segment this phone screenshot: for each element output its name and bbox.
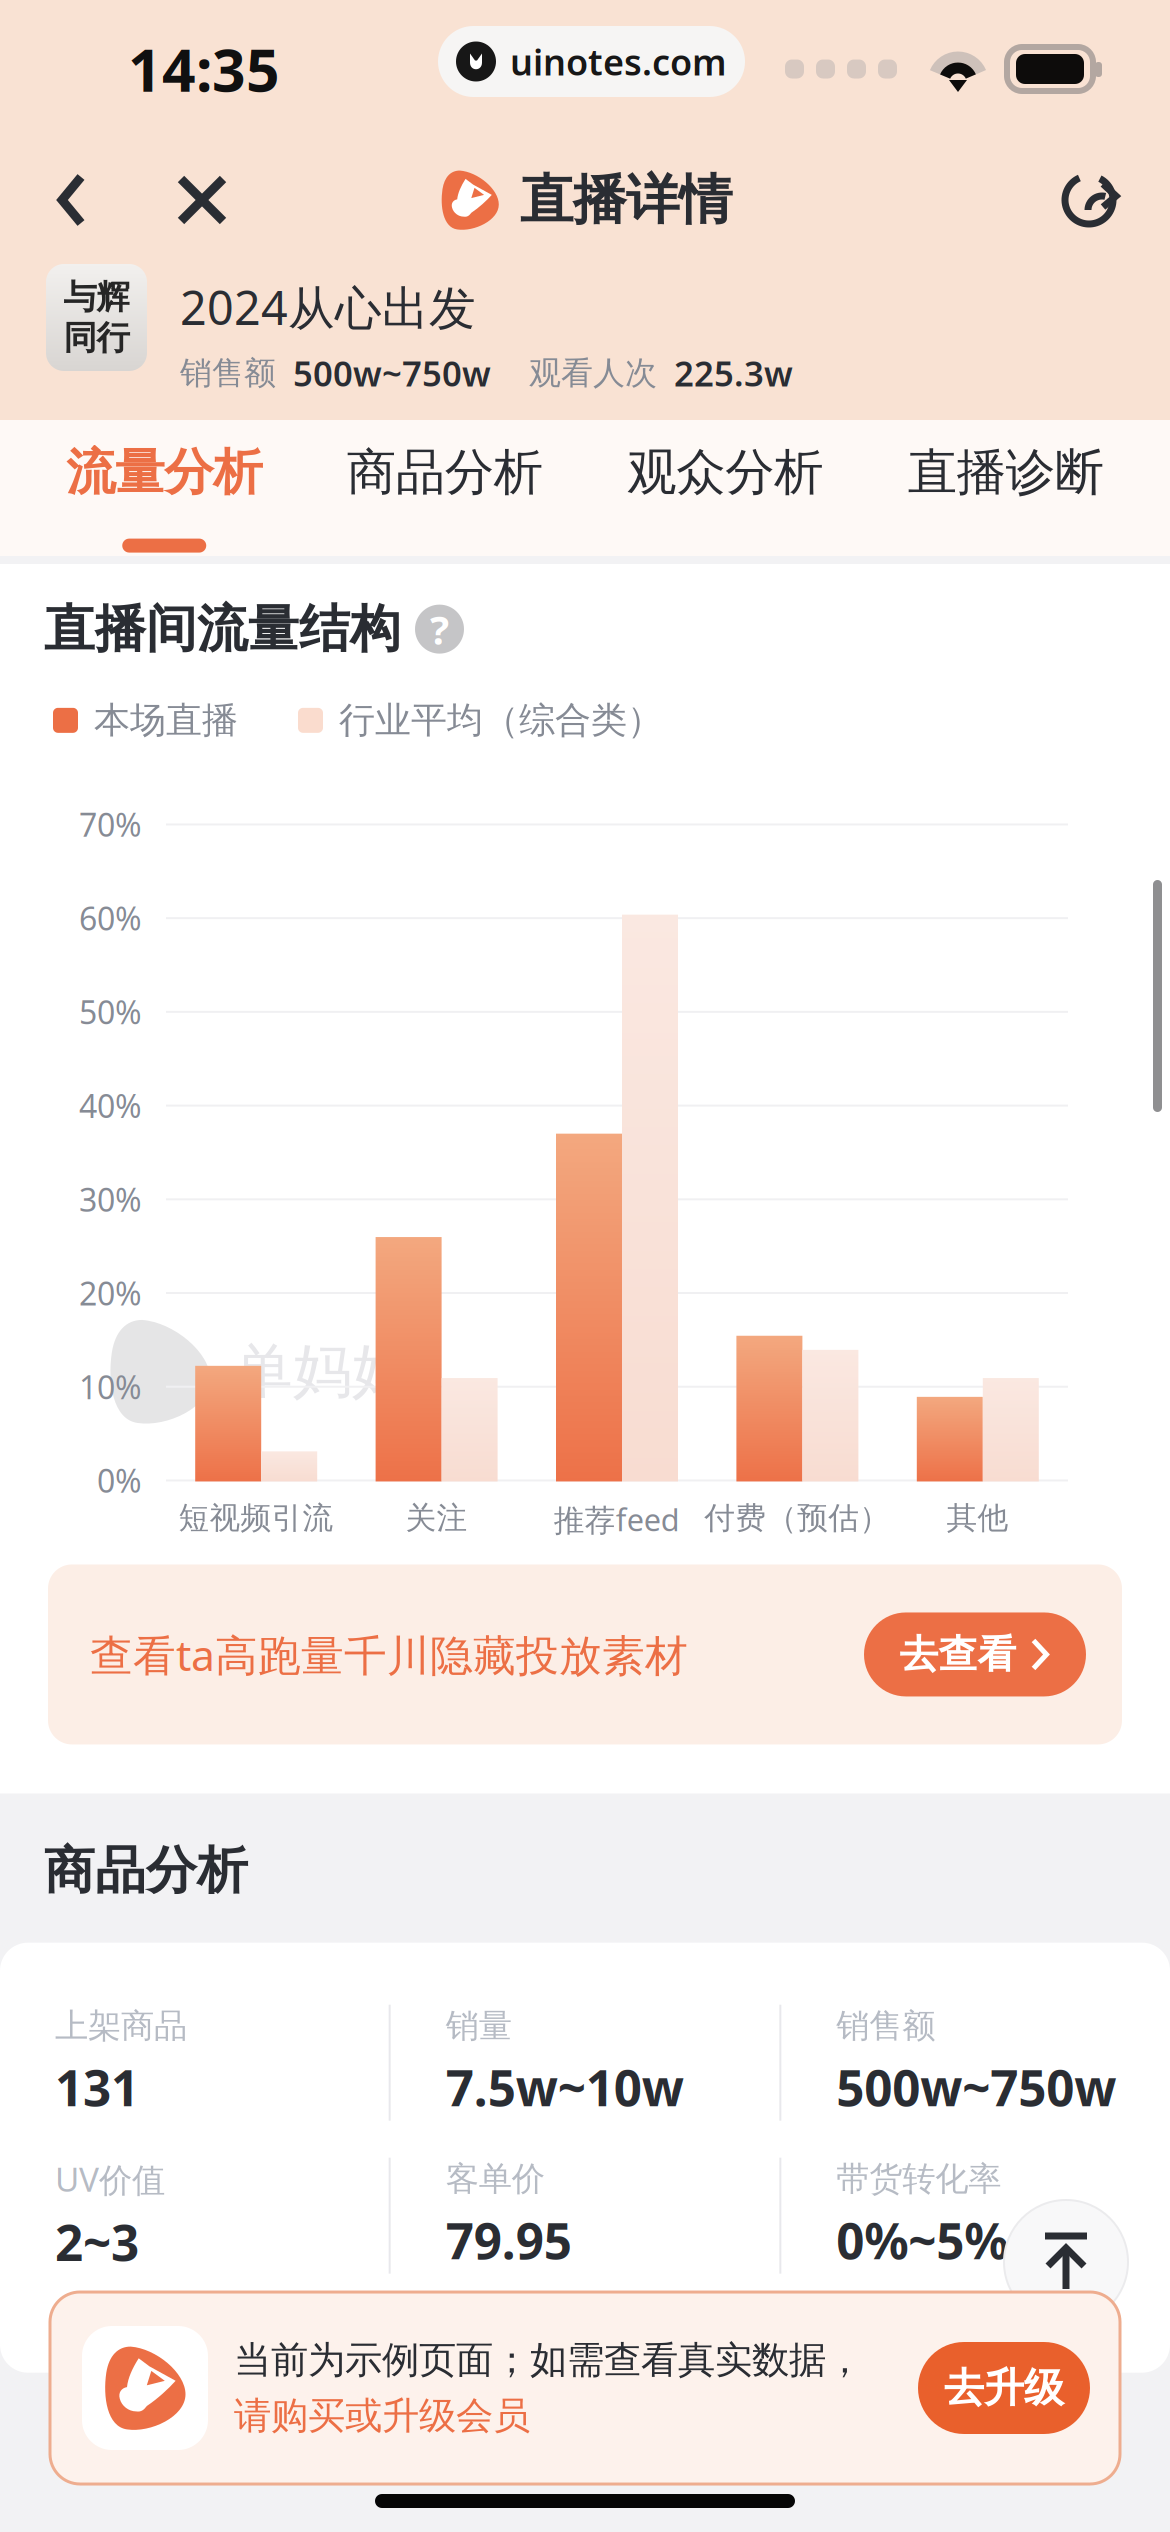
staticText: 销售额 [180, 353, 276, 393]
staticText: 销量 [446, 2005, 512, 2046]
button[interactable]: 观众分析 [585, 420, 865, 556]
staticText: 79.95 [446, 2207, 572, 2273]
staticText: 50% [79, 991, 142, 1033]
button[interactable]: 直播诊断 [865, 420, 1146, 556]
button[interactable]: 分享 [1040, 152, 1144, 248]
staticText: 商品分析 [44, 1839, 248, 1902]
staticText: 流量分析 [66, 442, 262, 503]
staticText: 225.3w [674, 350, 793, 396]
staticText: 带货转化率 [836, 2158, 1001, 2199]
staticText: 500w~750w [293, 350, 491, 396]
button[interactable]: 回到顶部 [1004, 2200, 1128, 2324]
staticText: 0% [97, 1459, 142, 1502]
staticText: 70% [79, 803, 142, 846]
button[interactable]: 返回 [32, 155, 110, 245]
staticText: 本场直播 [94, 698, 238, 742]
staticText: 直播间流量结构 [44, 598, 401, 660]
staticText: ? [430, 603, 449, 656]
staticText: 20% [79, 1272, 142, 1314]
staticText: 查看ta高跑量千川隐藏投放素材 [90, 1626, 688, 1683]
staticText: 关注 [405, 1499, 467, 1537]
staticText: 直播详情 [520, 167, 732, 233]
staticText: 131 [55, 2054, 139, 2120]
staticText: 40% [79, 1084, 142, 1127]
staticText: 7.5w~10w [446, 2054, 684, 2120]
button[interactable]: 查看ta高跑量千川隐藏投放素材 [0, 1564, 1170, 1744]
staticText: 推荐feed [554, 1499, 680, 1540]
button[interactable]: 流量分析 [24, 420, 304, 556]
button[interactable]: 商品分析 [304, 420, 585, 556]
staticText: 上架商品 [55, 2005, 187, 2046]
staticText: 去查看 [899, 1631, 1016, 1678]
staticText: 观众分析 [627, 442, 823, 503]
staticText: 14:35 [128, 30, 280, 108]
staticText: 客单价 [446, 2158, 545, 2199]
staticText: 其他 [947, 1499, 1009, 1537]
staticText: 当前为示例页面；如需查看真实数据， [234, 2337, 863, 2383]
button[interactable]: 去升级 [918, 2342, 1090, 2434]
staticText: 直播诊断 [908, 442, 1104, 503]
staticText: 2024从心出发 [180, 276, 476, 338]
staticText: 短视频引流 [178, 1499, 333, 1537]
staticText: 30% [79, 1178, 142, 1221]
staticText: 500w~750w [836, 2054, 1116, 2120]
staticText: 单妈妈 [234, 1335, 411, 1407]
button[interactable]: 说明 [415, 605, 464, 654]
staticText: 与辉 同行 [63, 277, 129, 358]
staticText: uinotes.com [510, 38, 727, 85]
staticText: 观看人次 [529, 353, 657, 393]
staticText: 2~3 [55, 2209, 139, 2275]
staticText: 销售额 [836, 2005, 935, 2046]
staticText: 商品分析 [347, 442, 543, 503]
staticText: 请购买或升级会员 [234, 2393, 530, 2439]
staticText: UV价值 [55, 2157, 165, 2201]
staticText: 去升级 [944, 2363, 1064, 2412]
staticText: 付费（预估） [704, 1499, 890, 1537]
staticText: 0%~5% [836, 2207, 1008, 2273]
button[interactable]: 关闭 [156, 151, 248, 249]
staticText: 行业平均（综合类） [339, 698, 663, 742]
staticText: 60% [79, 897, 142, 939]
staticText: 10% [79, 1365, 142, 1408]
